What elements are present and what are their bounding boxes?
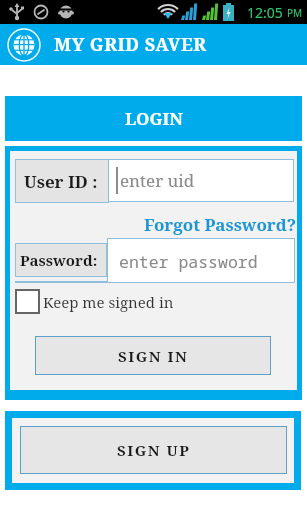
button[interactable]: SIGN UP <box>20 426 287 474</box>
staticText: SIGN UP <box>117 440 191 460</box>
button[interactable]: Password: <box>15 243 107 277</box>
staticText: enter password <box>119 250 258 272</box>
button[interactable]: SIGN IN <box>35 336 271 375</box>
staticText: enter uid <box>120 169 195 192</box>
staticText: LOGIN <box>125 107 183 130</box>
staticText: 12:05 <box>247 3 287 22</box>
staticText: User ID : <box>24 170 98 193</box>
button[interactable]: Keep me signed in <box>15 289 174 314</box>
staticText: Keep me signed in <box>43 292 174 312</box>
staticText: Password: <box>20 250 98 270</box>
staticText: SIGN IN <box>118 346 189 366</box>
staticText: PM <box>287 6 303 20</box>
button[interactable]: Forgot Password? <box>10 213 297 236</box>
staticText: Forgot Password? <box>144 213 297 236</box>
staticText: MY GRID SAVER <box>54 32 207 57</box>
button[interactable]: User ID : <box>15 159 109 203</box>
